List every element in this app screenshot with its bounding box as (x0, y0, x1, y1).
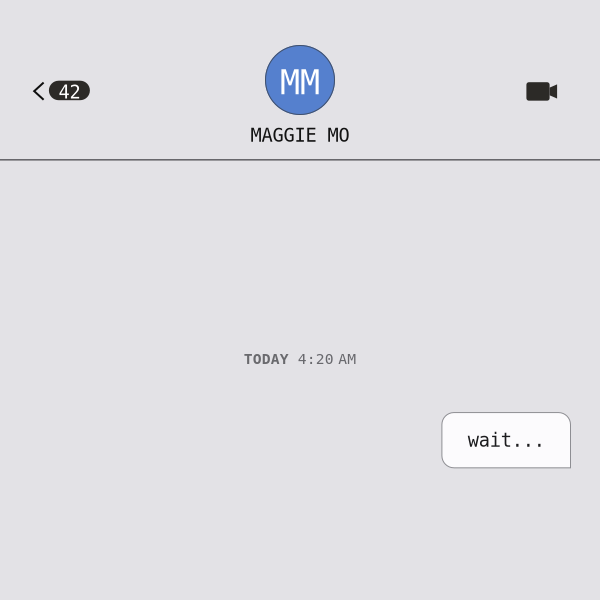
button[interactable]: MM (250, 45, 349, 146)
staticText: 4:20 (289, 350, 334, 368)
staticText: 42 (58, 81, 80, 103)
staticText: TODAY (244, 350, 289, 368)
button[interactable]: Back (34, 81, 90, 100)
button[interactable]: Start video call (526, 81, 557, 100)
staticText: wait... (468, 429, 545, 451)
staticText: MM (280, 63, 320, 102)
staticText: MAGGIE MO (250, 124, 349, 146)
staticText: AM (338, 350, 356, 368)
